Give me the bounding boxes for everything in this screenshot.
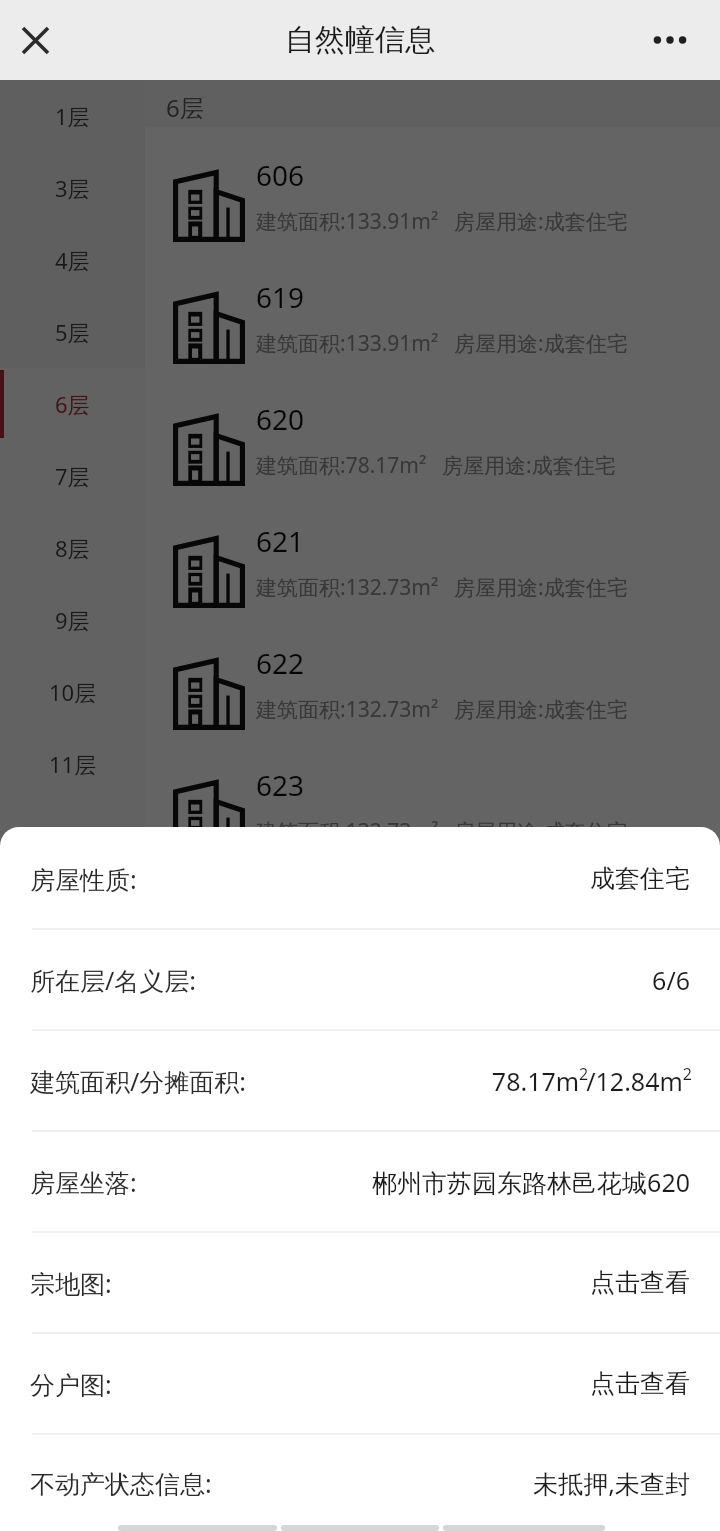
button[interactable]: 建筑面积/分摊面积: <box>0 1031 720 1130</box>
button[interactable]: 606 <box>145 145 720 267</box>
staticText: 自然幢信息 <box>285 21 435 59</box>
staticText: 78.17m2/12.84m2 <box>491 1063 690 1098</box>
staticText: 房屋性质: <box>30 862 137 896</box>
staticText: 房屋坐落: <box>30 1165 137 1199</box>
button[interactable]: 8层 <box>0 512 145 584</box>
staticText: 9层 <box>55 605 90 635</box>
button[interactable]: 10层 <box>0 656 145 728</box>
button[interactable]: 3层 <box>0 152 145 224</box>
button[interactable]: 6层 <box>0 368 145 440</box>
staticText: 3层 <box>55 173 90 203</box>
button[interactable]: 4层 <box>0 224 145 296</box>
button[interactable]: 房屋性质: <box>0 829 720 928</box>
button[interactable]: 5层 <box>0 296 145 368</box>
staticText: 房屋用途:成套住宅 <box>454 817 628 846</box>
staticText: 10层 <box>49 677 97 707</box>
staticText: 点击查看 <box>590 1368 690 1399</box>
staticText: 621 <box>256 522 305 560</box>
staticText: 619 <box>256 278 305 316</box>
staticText: 6层 <box>166 91 204 124</box>
button[interactable]: 621 <box>145 511 720 633</box>
button[interactable]: 房屋坐落: <box>0 1132 720 1231</box>
staticText: 房屋用途:成套住宅 <box>454 207 628 236</box>
staticText: 不动产状态信息: <box>30 1466 212 1500</box>
staticText: 房屋用途:成套住宅 <box>442 451 616 480</box>
staticText: 7层 <box>55 461 90 491</box>
button[interactable]: 619 <box>145 267 720 389</box>
staticText: 8层 <box>55 533 90 563</box>
staticText: 建筑面积/分摊面积: <box>30 1064 247 1098</box>
staticText: 4层 <box>55 245 90 275</box>
staticText: 622 <box>256 644 305 682</box>
staticText: 未抵押,未查封 <box>533 1466 690 1500</box>
staticText: 606 <box>256 156 305 194</box>
staticText: 建筑面积:132.73m² <box>256 817 439 846</box>
staticText: 房屋用途:成套住宅 <box>454 329 628 358</box>
button[interactable]: 620 <box>145 389 720 511</box>
staticText: 11层 <box>49 749 97 779</box>
staticText: 所在层/名义层: <box>30 963 197 997</box>
staticText: 房屋用途:成套住宅 <box>454 695 628 724</box>
button[interactable]: 分户图: <box>0 1334 720 1433</box>
staticText: 623 <box>256 766 305 804</box>
staticText: 点击查看 <box>590 1267 690 1298</box>
staticText: 1层 <box>55 101 90 131</box>
button[interactable]: 11层 <box>0 728 145 800</box>
staticText: 建筑面积:132.73m² <box>256 695 439 724</box>
button[interactable]: 623 <box>145 755 720 877</box>
staticText: 5层 <box>55 317 90 347</box>
staticText: 建筑面积:78.17m² <box>256 451 427 480</box>
button[interactable]: 不动产状态信息: <box>0 1435 720 1531</box>
staticText: 分户图: <box>30 1367 112 1401</box>
staticText: 成套住宅 <box>590 863 690 894</box>
staticText: 郴州市苏园东路林邑花城620 <box>372 1165 690 1199</box>
staticText: 宗地图: <box>30 1266 112 1300</box>
button[interactable]: 宗地图: <box>0 1233 720 1332</box>
staticText: 6层 <box>55 389 90 419</box>
staticText: 建筑面积:133.91m² <box>256 207 439 236</box>
button[interactable]: 所在层/名义层: <box>0 930 720 1029</box>
button[interactable]: More options <box>619 0 720 80</box>
button[interactable]: 622 <box>145 633 720 755</box>
button[interactable]: 1层 <box>0 80 145 152</box>
button[interactable]: 9层 <box>0 584 145 656</box>
staticText: 建筑面积:133.91m² <box>256 329 439 358</box>
staticText: 房屋用途:成套住宅 <box>454 573 628 602</box>
button[interactable]: Close <box>0 0 71 80</box>
staticText: 6/6 <box>652 963 690 997</box>
button[interactable]: 7层 <box>0 440 145 512</box>
staticText: 620 <box>256 400 305 438</box>
staticText: 建筑面积:132.73m² <box>256 573 439 602</box>
